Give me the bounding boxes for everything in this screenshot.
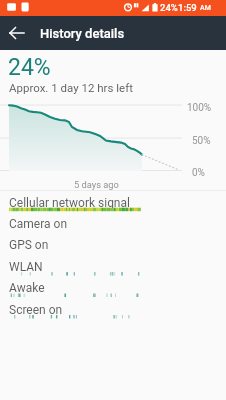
staticText: 24% [8, 54, 51, 81]
button[interactable]: Screen on [0, 303, 226, 324]
staticText: Awake [9, 281, 45, 295]
staticText: Approx. 1 day 12 hrs left [9, 81, 133, 94]
button[interactable]: GPS on [0, 238, 226, 259]
staticText: Screen on [9, 303, 63, 317]
staticText: 100% [187, 102, 212, 114]
staticText: GPS on [9, 238, 49, 252]
staticText: Camera on [9, 217, 68, 231]
staticText: 5 days ago [74, 179, 119, 190]
staticText: AM [200, 4, 211, 12]
staticText: 0% [192, 167, 205, 179]
staticText: 24% [160, 2, 178, 13]
button[interactable]: Awake [0, 281, 226, 302]
staticText: 50% [192, 135, 211, 147]
button[interactable]: Cellular network signal [0, 196, 226, 217]
button[interactable]: Camera on [0, 217, 226, 238]
staticText: Cellular network signal [9, 196, 130, 210]
button[interactable]: Back [6, 22, 28, 44]
button[interactable]: WLAN [0, 260, 226, 281]
staticText: 1:59 [178, 2, 197, 13]
staticText: WLAN [9, 260, 43, 274]
staticText: History details [40, 26, 125, 41]
